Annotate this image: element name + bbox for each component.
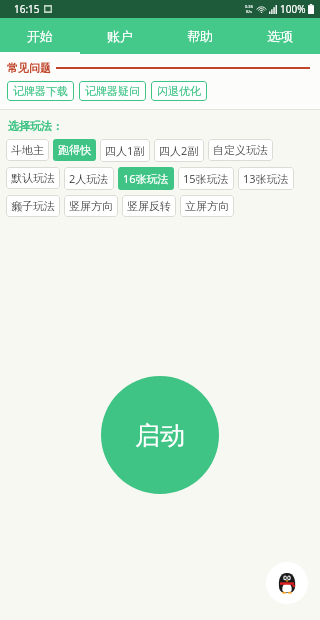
staticText: 立屏方向: [185, 199, 229, 213]
staticText: 癞子玩法: [11, 199, 55, 213]
staticText: 选项: [267, 28, 293, 44]
button[interactable]: 四人2副: [154, 139, 204, 162]
button[interactable]: 竖屏方向: [64, 195, 118, 217]
staticText: 竖屏方向: [69, 199, 113, 213]
staticText: 15张玩法: [183, 171, 229, 186]
staticText: 四人2副: [159, 143, 199, 158]
staticText: 帮助: [187, 28, 213, 44]
staticText: 16:15: [14, 2, 40, 16]
staticText: 账户: [107, 28, 133, 44]
button[interactable]: 跑得快: [53, 139, 96, 161]
button[interactable]: 记牌器下载: [7, 81, 74, 101]
staticText: 四人1副: [105, 143, 145, 158]
button[interactable]: 13张玩法: [238, 167, 294, 190]
button[interactable]: 自定义玩法: [208, 139, 273, 161]
staticText: 记牌器疑问: [85, 84, 140, 98]
staticText: 闪退优化: [157, 84, 201, 98]
staticText: 16张玩法: [123, 171, 169, 186]
button[interactable]: 开始: [0, 18, 80, 54]
staticText: 启动: [135, 420, 185, 451]
staticText: 开始: [27, 28, 53, 44]
button[interactable]: 帮助: [160, 18, 240, 54]
staticText: 13张玩法: [243, 171, 289, 186]
staticText: 常见问题: [7, 61, 51, 75]
button[interactable]: 选项: [240, 18, 320, 54]
staticText: 跑得快: [58, 143, 91, 157]
staticText: 选择玩法：: [8, 119, 63, 133]
button[interactable]: 癞子玩法: [6, 195, 60, 217]
staticText: K/s: [246, 9, 252, 14]
staticText: 2人玩法: [69, 171, 109, 186]
button[interactable]: 默认玩法: [6, 167, 60, 189]
button[interactable]: 账户: [80, 18, 160, 54]
button[interactable]: 16张玩法: [118, 167, 174, 190]
button[interactable]: 立屏方向: [180, 195, 234, 217]
staticText: 自定义玩法: [213, 143, 268, 157]
button[interactable]: 斗地主: [6, 139, 49, 161]
button[interactable]: 2人玩法: [64, 167, 114, 190]
button[interactable]: QQ 客服: [266, 562, 308, 604]
button[interactable]: 启动: [101, 376, 219, 494]
staticText: 记牌器下载: [13, 84, 68, 98]
staticText: 100%: [280, 2, 306, 16]
staticText: 默认玩法: [11, 171, 55, 185]
staticText: 0.36: [245, 4, 253, 9]
button[interactable]: 15张玩法: [178, 167, 234, 190]
button[interactable]: 竖屏反转: [122, 195, 176, 217]
button[interactable]: 记牌器疑问: [79, 81, 146, 101]
button[interactable]: 闪退优化: [151, 81, 207, 101]
button[interactable]: 四人1副: [100, 139, 150, 162]
staticText: 竖屏反转: [127, 199, 171, 213]
staticText: 斗地主: [11, 143, 44, 157]
